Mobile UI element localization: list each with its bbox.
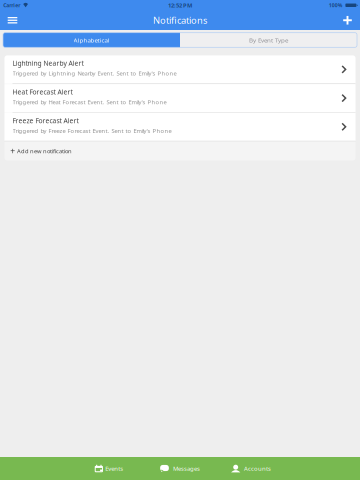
staticText: Events: [105, 464, 123, 473]
button[interactable]: Messages: [152, 457, 207, 480]
staticText: Alphabetical: [73, 36, 109, 44]
button[interactable]: Menu: [0, 10, 25, 30]
button[interactable]: By Event Type: [180, 33, 357, 47]
staticText: Triggered by Lightning Nearby Event. Sen…: [12, 69, 176, 77]
button[interactable]: Heat Forecast Alert: [4, 84, 355, 112]
staticText: Freeze Forecast Alert: [12, 116, 78, 125]
button[interactable]: Freeze Forecast Alert: [4, 113, 355, 141]
staticText: 100%: [329, 2, 343, 9]
staticText: Accounts: [244, 464, 271, 473]
staticText: Heat Forecast Alert: [12, 87, 72, 96]
button[interactable]: Events: [81, 457, 136, 480]
staticText: 12:52 PM: [168, 1, 192, 9]
staticText: +: [10, 145, 15, 157]
button[interactable]: +: [4, 141, 355, 160]
button[interactable]: Alphabetical: [3, 33, 180, 47]
staticText: Triggered by Heat Forecast Event. Sent t…: [12, 98, 166, 106]
button[interactable]: Add notification: [335, 10, 360, 30]
button[interactable]: Accounts: [223, 457, 278, 480]
staticText: By Event Type: [249, 36, 288, 44]
staticText: Triggered by Freeze Forecast Event. Sent…: [12, 127, 171, 135]
staticText: Notifications: [153, 14, 207, 27]
staticText: Messages: [173, 464, 200, 473]
staticText: Carrier: [3, 2, 20, 9]
staticText: Add new notification: [17, 147, 72, 155]
staticText: Lightning Nearby Alert: [12, 59, 83, 68]
button[interactable]: Lightning Nearby Alert: [4, 55, 355, 83]
